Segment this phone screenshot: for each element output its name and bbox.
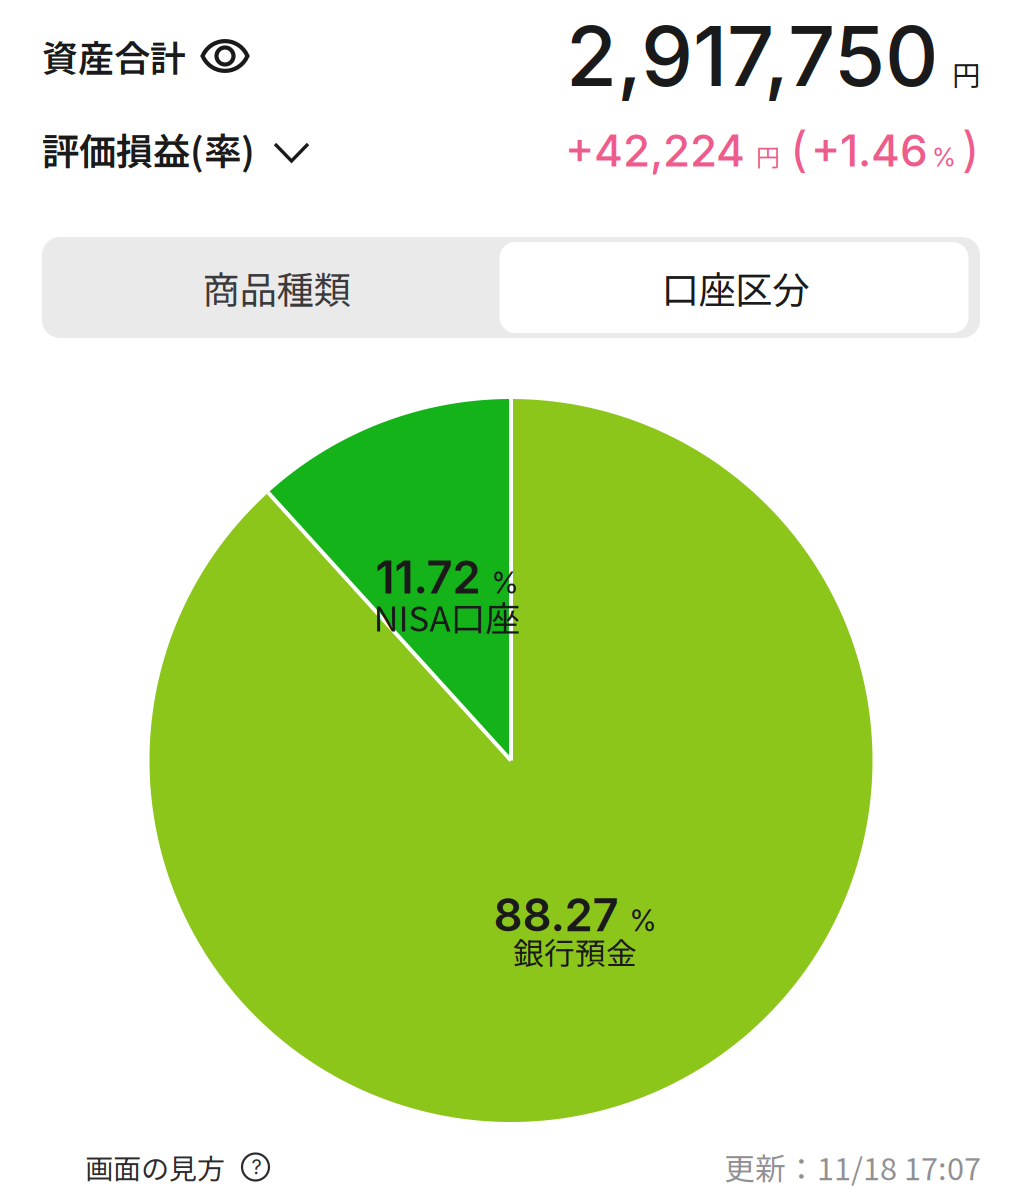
staticText: 88.27 [493,887,618,942]
staticText: 円 [756,139,780,173]
button[interactable]: 口座区分 [511,237,980,338]
staticText: 資産合計 [42,30,186,82]
button[interactable]: 商品種類 [42,237,511,338]
staticText: NISA口座 [373,591,520,641]
staticText: 2,917,750 [566,6,938,106]
staticText: ? [251,1155,261,1179]
staticText: 評価損益(率) [42,122,255,176]
staticText: 商品種類 [202,260,350,315]
staticText: ) [962,120,980,178]
staticText: +42,224 [565,124,745,177]
staticText: 銀行預金 [513,929,637,974]
staticText: 円 [952,54,980,94]
staticText: 口座区分 [661,260,809,315]
staticText: 更新：11/18 17:07 [724,1145,981,1189]
button[interactable]: 画面の見方 [85,1143,269,1191]
staticText: ( [790,120,808,178]
staticText: % [491,565,518,600]
staticText: % [932,142,956,173]
staticText: +1.46 [811,124,928,177]
staticText: % [629,903,656,938]
staticText: 11.72 [375,549,480,604]
button[interactable]: 資産合計 [42,23,248,89]
button[interactable]: 評価損益(率) [42,119,308,179]
staticText: 画面の見方 [85,1147,225,1187]
